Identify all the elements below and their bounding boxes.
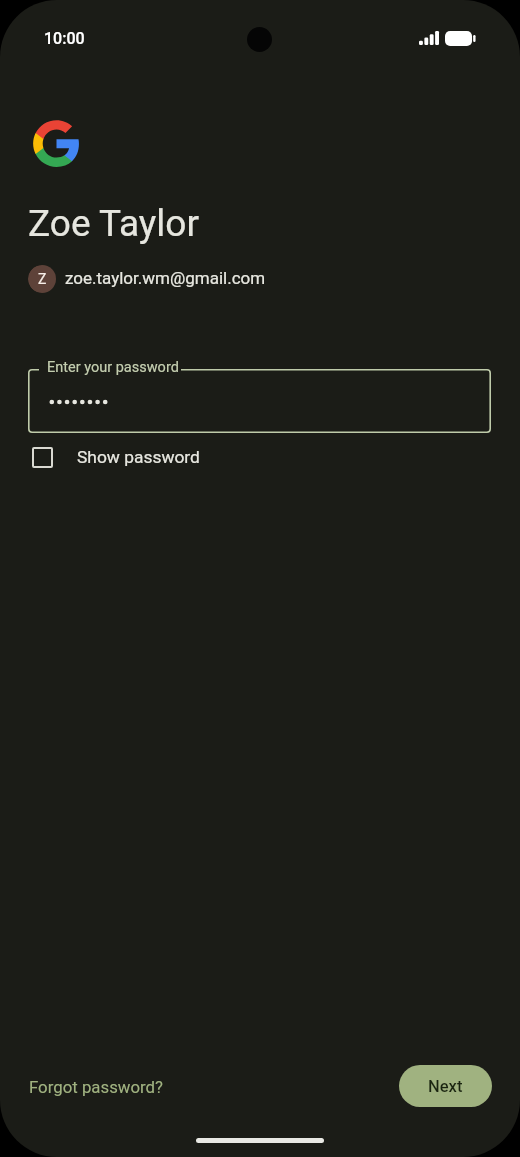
staticText: zoe.taylor.wm@gmail.com — [65, 268, 266, 288]
staticText: Next — [428, 1077, 463, 1096]
staticText: Z — [38, 271, 47, 287]
staticText: Forgot password? — [29, 1077, 163, 1097]
staticText: Enter your password — [47, 359, 179, 376]
button[interactable]: Enter your password — [28, 369, 491, 433]
staticText: 10:00 — [44, 29, 85, 48]
button[interactable]: Next — [399, 1065, 492, 1107]
button[interactable]: Forgot password? — [21, 1069, 171, 1105]
button[interactable]: Z — [28, 265, 266, 293]
staticText: Zoe Taylor — [28, 202, 199, 245]
button[interactable]: Show password — [24, 439, 214, 476]
staticText: Show password — [77, 447, 200, 467]
